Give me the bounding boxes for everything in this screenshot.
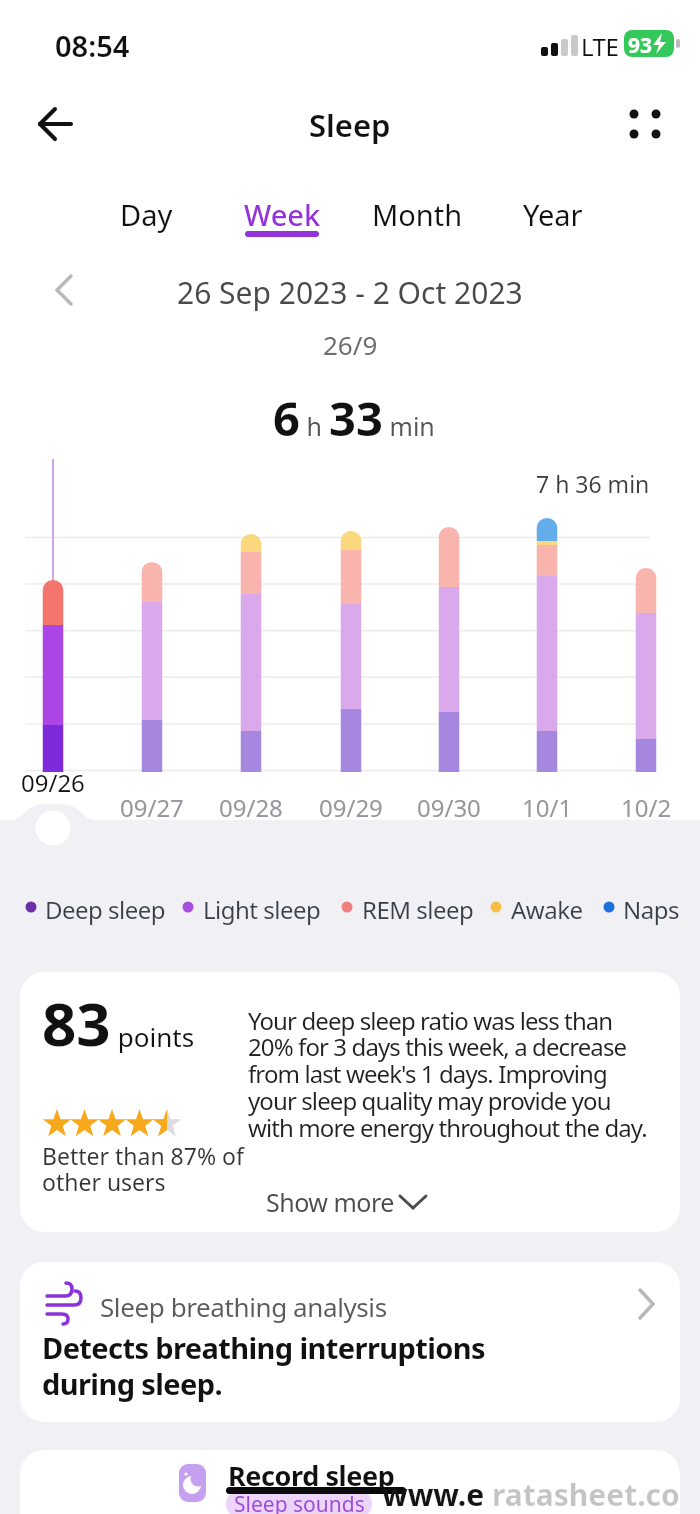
staticText: Your deep sleep ratio was less than 20% … [248, 1004, 653, 1144]
staticText: Light sleep [203, 893, 321, 926]
staticText: www.e [382, 1474, 485, 1514]
button[interactable]: Year [516, 192, 590, 236]
staticText: 6 [273, 386, 300, 450]
staticText: Day [120, 195, 173, 234]
button[interactable]: Record sleep [20, 1450, 680, 1514]
staticText: 09/30 [417, 791, 481, 824]
staticText: Detects breathing interruptions during s… [42, 1328, 486, 1404]
staticText: Sleep breathing analysis [100, 1289, 387, 1324]
staticText: REM sleep [362, 893, 474, 926]
staticText: Awake [511, 893, 583, 926]
button[interactable]: Month [368, 192, 466, 236]
staticText: Better than 87% of other users [42, 1140, 244, 1198]
staticText: 09/28 [219, 791, 283, 824]
staticText: 83 [42, 982, 111, 1064]
button[interactable]: Day [108, 192, 184, 236]
staticText: 33 [329, 386, 383, 450]
staticText: 7 h 36 min [536, 468, 650, 499]
staticText: Week [244, 195, 321, 234]
staticText: ratasheet.com [492, 1474, 680, 1514]
staticText: 09/26 [21, 766, 85, 799]
staticText: Deep sleep [45, 893, 166, 926]
staticText: points [111, 1019, 195, 1054]
button[interactable]: Show more [266, 1184, 416, 1220]
staticText: h [300, 409, 329, 443]
staticText: LTE [581, 30, 619, 63]
staticText: 93 [628, 31, 653, 60]
staticText: Year [523, 195, 583, 234]
staticText: 10/1 [522, 791, 573, 824]
staticText: 09/27 [120, 791, 184, 824]
staticText: 09/29 [319, 791, 383, 824]
staticText: 08:54 [55, 26, 130, 65]
staticText: Show more [266, 1185, 394, 1219]
staticText: 26 Sep 2023 - 2 Oct 2023 [177, 272, 523, 313]
staticText: Sleep [309, 104, 391, 146]
staticText: Record sleep [228, 1457, 395, 1494]
staticText: min [383, 409, 435, 443]
button[interactable]: Sleep breathing analysis [20, 1262, 680, 1422]
staticText: Sleep sounds [234, 1490, 365, 1514]
staticText: 10/2 [621, 791, 672, 824]
staticText: Naps [623, 893, 679, 926]
button[interactable]: Week [238, 192, 326, 236]
staticText: 26/9 [323, 327, 378, 362]
staticText: Month [372, 195, 463, 234]
